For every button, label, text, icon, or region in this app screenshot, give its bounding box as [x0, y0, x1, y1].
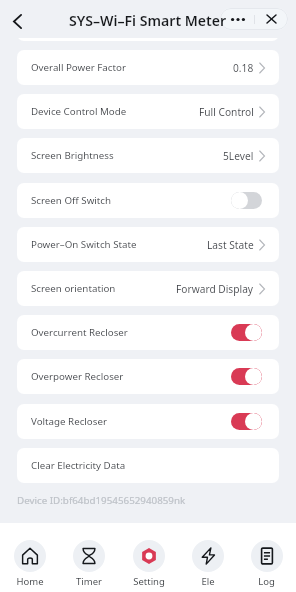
button[interactable]: Screen orientation — [17, 271, 279, 306]
staticText: Power–On Switch State — [31, 238, 137, 251]
button[interactable]: Overall Power Factor — [17, 50, 279, 85]
button[interactable]: Back — [4, 6, 31, 33]
staticText: Ele — [201, 575, 215, 588]
button[interactable]: Switch on — [231, 368, 262, 385]
staticText: 0.18 — [233, 61, 254, 75]
staticText: Clear Electricity Data — [31, 459, 126, 472]
staticText: 5Level — [223, 149, 254, 163]
staticText: Device ID:bf64bd19545652940859nk — [17, 494, 186, 507]
staticText: Overall Power Factor — [31, 17, 126, 30]
button[interactable]: Overcurrent Recloser — [17, 315, 279, 350]
staticText: Full Control — [199, 105, 254, 119]
button[interactable]: Voltage Recloser — [17, 404, 279, 439]
staticText: Overcurrent Recloser — [31, 326, 128, 339]
button[interactable]: Home — [0, 523, 59, 588]
button[interactable]: More options — [220, 8, 254, 30]
staticText: Device Control Mode — [31, 105, 127, 118]
staticText: Home — [16, 575, 44, 588]
button[interactable]: Screen Brightness — [17, 138, 279, 173]
staticText: Screen orientation — [31, 282, 116, 295]
staticText: Overpower Recloser — [31, 370, 124, 383]
button[interactable]: Power–On Switch State — [17, 227, 279, 262]
staticText: Last State — [207, 238, 254, 252]
button[interactable]: Timer — [59, 523, 118, 588]
button[interactable]: Setting — [119, 523, 178, 588]
staticText: Overall Power Factor — [31, 61, 126, 74]
button[interactable]: Overpower Recloser — [17, 359, 279, 394]
button[interactable]: Ele — [178, 523, 237, 588]
staticText: Setting — [133, 575, 165, 588]
button[interactable]: Clear Electricity Data — [17, 448, 279, 483]
button[interactable]: Device Control Mode — [17, 94, 279, 129]
staticText: Screen Off Switch — [31, 194, 112, 207]
button[interactable]: Switch off — [231, 192, 262, 209]
button[interactable]: Switch on — [231, 413, 262, 430]
button[interactable]: Close — [255, 8, 288, 30]
staticText: Forward Display — [176, 282, 254, 296]
staticText: Timer — [76, 575, 102, 588]
staticText: Screen Brightness — [31, 149, 114, 162]
button[interactable]: Overall Power Factor — [17, 6, 279, 41]
staticText: Voltage Recloser — [31, 415, 107, 428]
button[interactable]: Log — [237, 523, 296, 588]
button[interactable]: Screen Off Switch — [17, 183, 279, 218]
staticText: SYS–Wi–Fi Smart Meter — [69, 11, 227, 30]
button[interactable]: Switch on — [231, 324, 262, 341]
staticText: Log — [258, 575, 275, 588]
